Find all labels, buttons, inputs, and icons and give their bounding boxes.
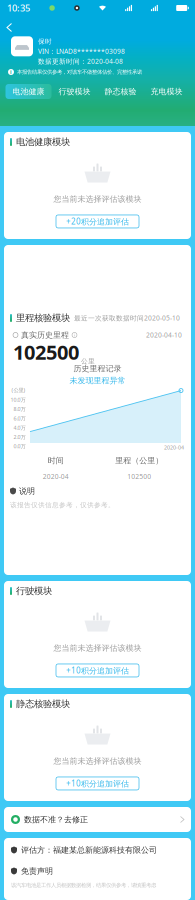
staticText: 本报告结果仅供参考，对该车不做整体估价、完整性承诺 [17,69,142,75]
staticText: 您当前未选择评估该模块 [53,643,141,653]
staticText: 历史里程记录 [73,364,121,373]
staticText: 免责声明 [21,866,53,876]
staticText: 评估方：福建某总新能源科技有限公司 [21,845,157,855]
staticText: 行驶模块 [58,87,90,96]
staticText: 静态核验 [104,87,136,96]
staticText: 102500 [127,472,151,481]
staticText: 8.0万 [13,405,25,413]
staticText: (公里) [11,386,25,394]
button[interactable]: +10积分追加评估 [56,664,139,677]
button[interactable]: 返回 [0,18,18,36]
staticText: 里程（公里） [115,456,163,465]
staticText: 电池健康模块 [16,136,70,148]
staticText: 数据不准？去修正 [24,815,88,824]
staticText: 最近一次获取数据时间2020-05-10 [74,314,180,322]
staticText: 10.0万 [10,396,25,403]
staticText: 该报告仅供信息参考，仅供参考。 [10,501,115,509]
staticText: 2.0万 [13,433,25,440]
staticText: 10:35 [7,2,30,14]
staticText: 该汽车电池是工作人员根据数据检测，结果仅供参考，请慎重考虑 [11,882,156,889]
button[interactable]: 静态核验 [97,84,143,99]
staticText: 电池健康 [12,87,44,96]
staticText: 您当前未选择评估该模块 [53,194,141,204]
staticText: VIN：LNAD8*******03098 [38,47,125,56]
button[interactable]: 电池健康 [5,84,51,99]
button[interactable]: 行驶模块 [51,84,97,99]
staticText: 充电模块 [150,87,182,96]
staticText: 2020-04 [164,444,184,451]
staticText: 里程核验模块 [16,312,70,324]
staticText: 0.0万 [13,443,25,450]
staticText: 说明 [19,486,35,496]
staticText: 未发现里程异常 [69,376,125,385]
staticText: i [74,332,75,338]
staticText: 6.0万 [13,415,25,422]
staticText: 真实历史里程 [21,330,69,340]
staticText: i [10,68,12,76]
staticText: 102500 [13,339,79,365]
button[interactable]: +20积分追加评估 [56,215,139,228]
staticText: +10积分追加评估 [66,778,129,789]
staticText: 公里 [81,357,95,365]
staticText: 时间 [48,456,64,465]
staticText: 2020-04-10 [146,331,182,339]
staticText: 行驶模块 [16,585,52,597]
staticText: 您当前未选择评估该模块 [53,756,141,766]
staticText: +20积分追加评估 [66,216,129,227]
staticText: 保时 [38,37,52,45]
staticText: 数据更新时间：2020-04-08 [38,57,123,66]
button[interactable]: +10积分追加评估 [56,777,139,790]
button[interactable]: 充电模块 [143,84,189,99]
staticText: 静态核验模块 [16,698,70,710]
staticText: +10积分追加评估 [66,665,129,676]
button[interactable]: 数据不准？去修正 [4,807,191,832]
staticText: 2020-04 [43,472,69,481]
staticText: 4.0万 [13,424,25,431]
